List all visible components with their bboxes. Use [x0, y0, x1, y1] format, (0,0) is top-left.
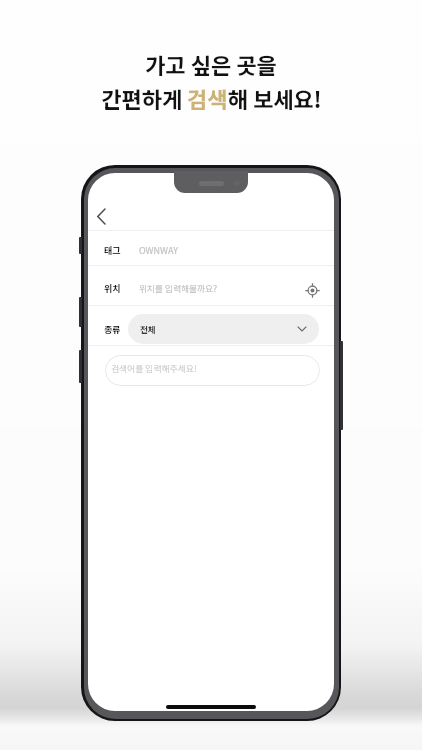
staticText: 태그	[104, 244, 121, 257]
staticText: 간편하게 검색해 보세요!	[101, 82, 322, 114]
button[interactable]: 검색어를 입력해주세요!	[105, 355, 320, 386]
staticText: 전체	[140, 323, 156, 335]
staticText: 위치	[104, 282, 121, 295]
button[interactable]: Back	[88, 201, 116, 231]
staticText: 위치를 입력해볼까요?	[139, 282, 217, 295]
button[interactable]: 전체	[128, 314, 319, 344]
staticText: 검색어를 입력해주세요!	[111, 362, 197, 375]
staticText: 종류	[104, 323, 121, 336]
staticText: 가고 싶은 곳을	[145, 48, 277, 80]
button[interactable]: Use my location	[305, 283, 320, 298]
staticText: OWNWAY	[139, 244, 178, 257]
